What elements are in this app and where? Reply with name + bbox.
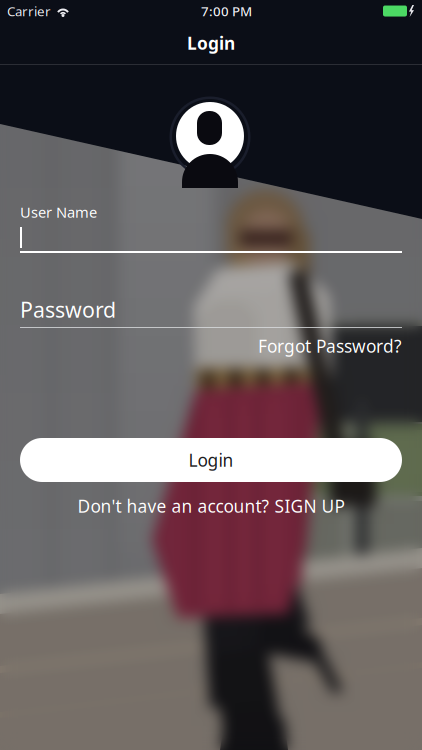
staticText: Login	[188, 448, 233, 471]
button[interactable]: Forgot Password?	[258, 337, 402, 355]
staticText: Don't have an account? SIGN UP	[77, 494, 344, 517]
button[interactable]: Login	[20, 438, 402, 482]
staticText: Password	[20, 295, 116, 324]
staticText: 7:00 PM	[201, 2, 252, 20]
staticText: Carrier	[7, 2, 51, 20]
button[interactable]: Don't have an account? SIGN UP	[77, 497, 344, 515]
staticText: Login	[187, 31, 235, 54]
staticText: User Name	[20, 202, 97, 222]
staticText: Forgot Password?	[258, 334, 402, 357]
